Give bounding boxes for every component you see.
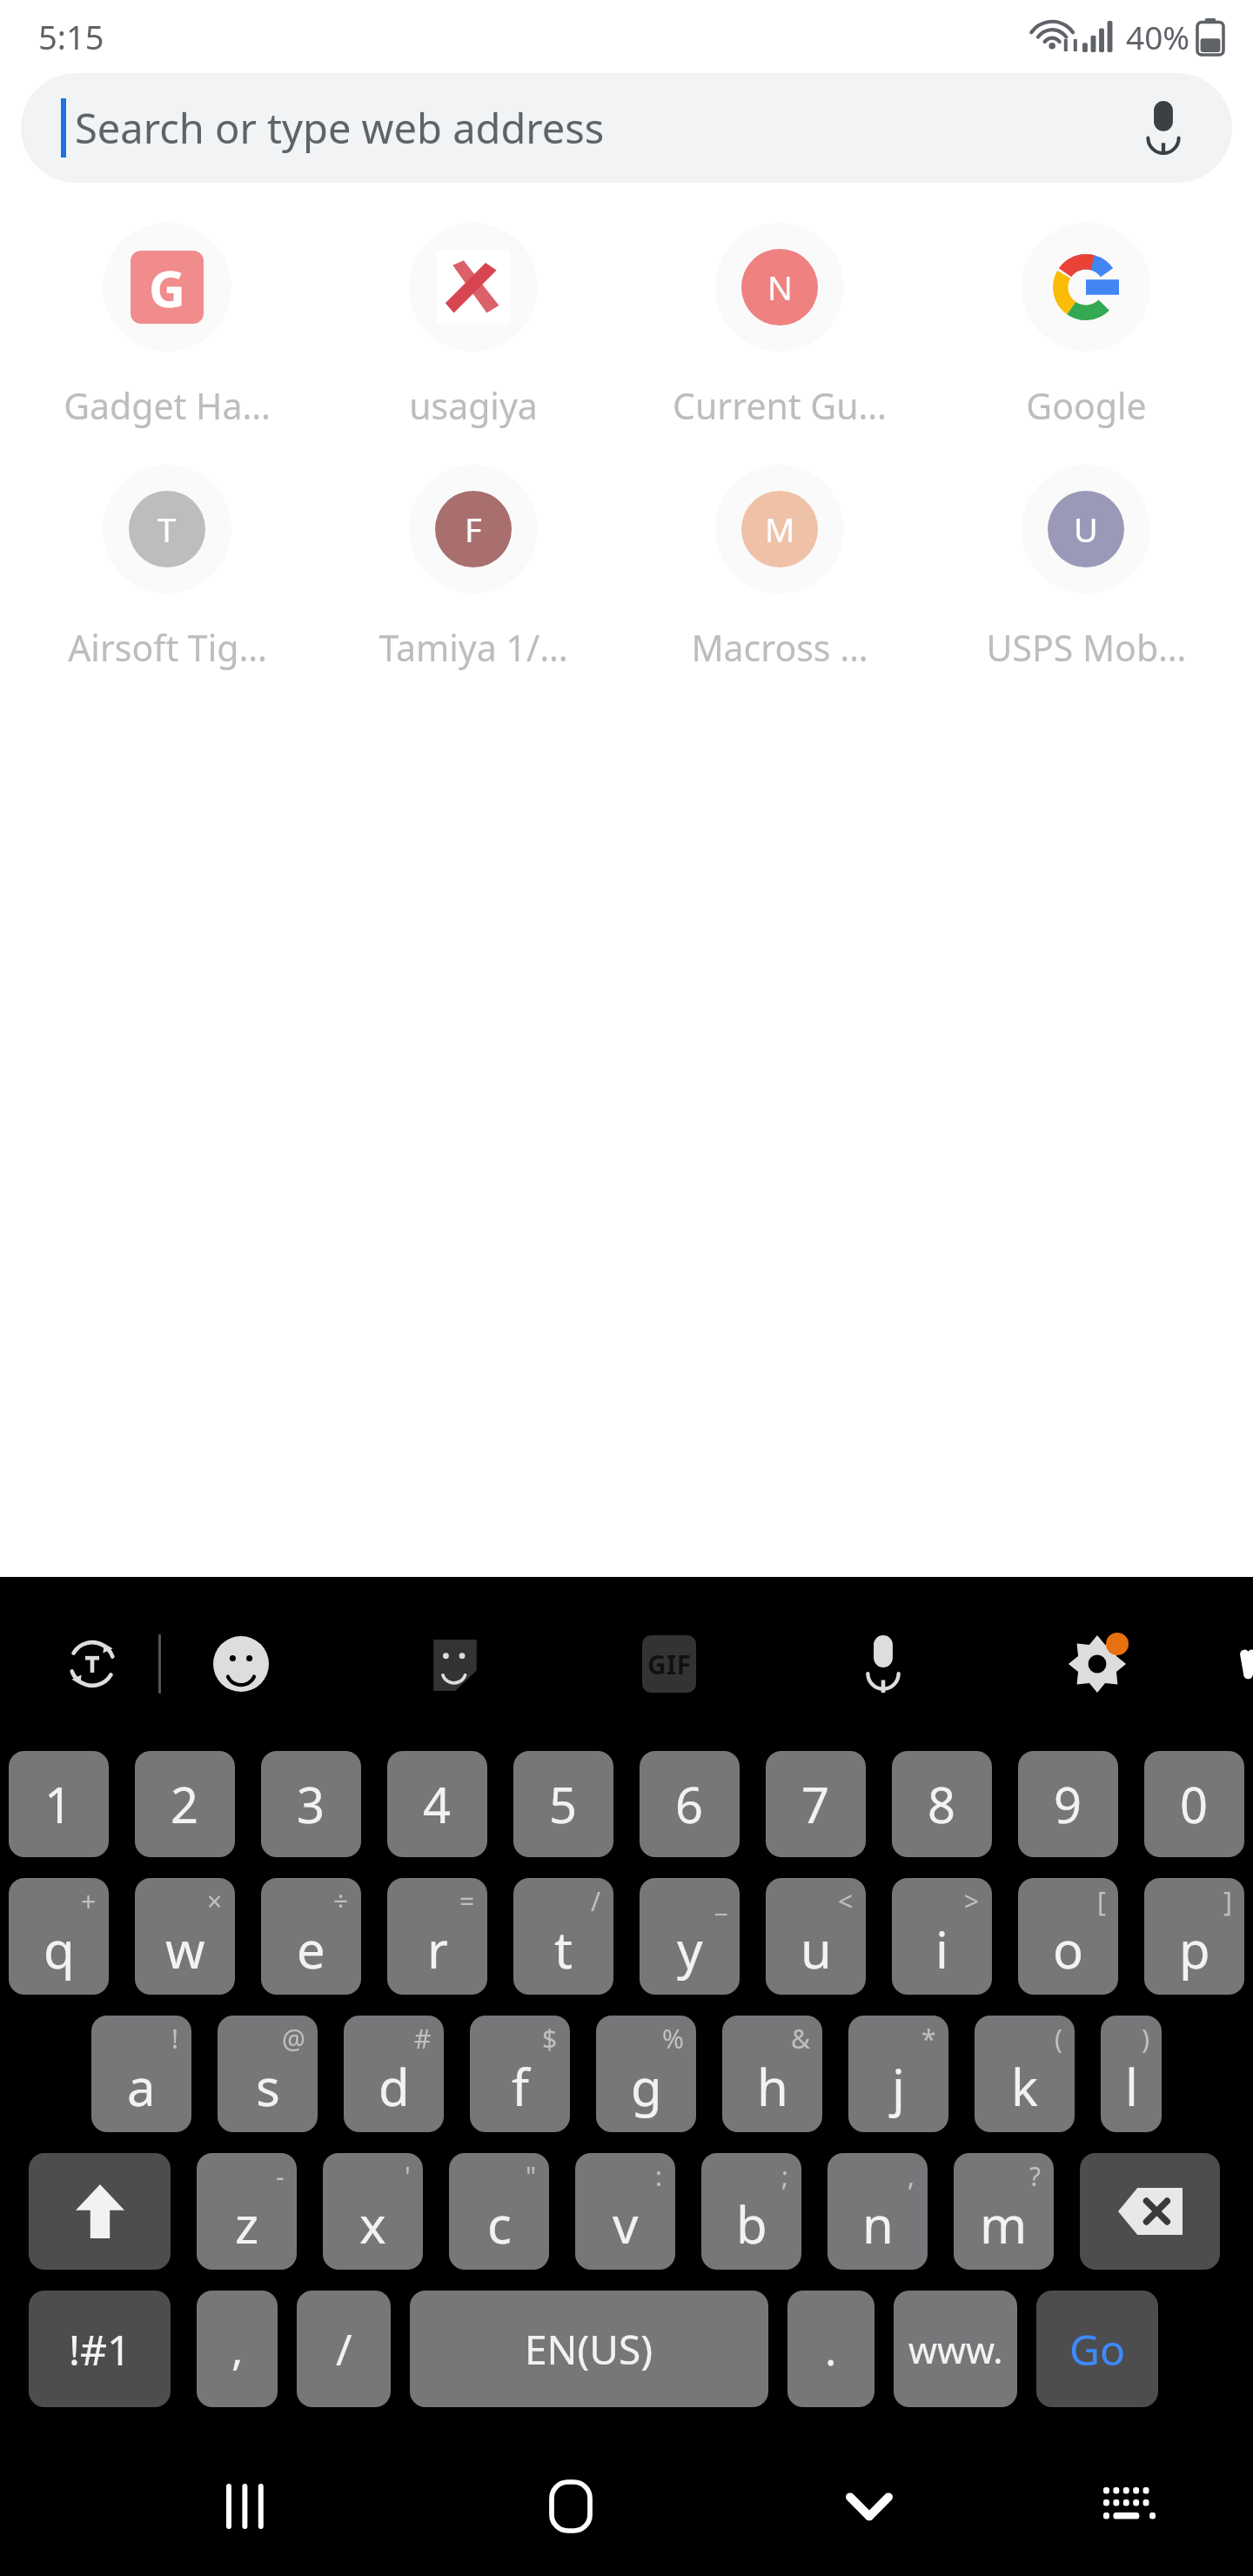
button[interactable]: Stickers (413, 1622, 497, 1706)
button[interactable]: EN(US) (410, 2291, 768, 2407)
button[interactable]: 4 (387, 1751, 487, 1857)
button[interactable]: 6 (640, 1751, 740, 1857)
staticText: 6 (675, 1771, 704, 1837)
staticText: 0 (1180, 1771, 1209, 1837)
button[interactable]: @ (218, 2016, 318, 2132)
button[interactable]: Voice search (1116, 80, 1211, 176)
button[interactable]: G (14, 223, 320, 430)
button[interactable]: F (320, 465, 626, 672)
staticText: n (862, 2190, 894, 2258)
staticText: k (1011, 2052, 1038, 2121)
staticText: z (235, 2190, 259, 2258)
button[interactable]: , (197, 2291, 278, 2407)
button[interactable]: ' (323, 2153, 423, 2270)
button[interactable]: Search or type web address (21, 73, 1232, 183)
staticText: u (801, 1915, 832, 1983)
button[interactable]: " (449, 2153, 549, 2270)
button[interactable]: 0 (1144, 1751, 1244, 1857)
staticText: - (276, 2158, 285, 2194)
staticText: Current Gu… (673, 381, 887, 430)
staticText: j (892, 2052, 905, 2121)
staticText: 40% (1126, 15, 1190, 58)
button[interactable]: ( (975, 2016, 1075, 2132)
button[interactable]: 2 (135, 1751, 235, 1857)
button[interactable]: $ (470, 2016, 570, 2132)
button[interactable]: ! (91, 2016, 191, 2132)
button[interactable]: Shift (29, 2153, 171, 2270)
staticText: b (736, 2190, 767, 2258)
button[interactable]: M (626, 465, 933, 672)
staticText: 9 (1054, 1771, 1082, 1837)
staticText: ? (1029, 2158, 1042, 2194)
button[interactable]: ? (954, 2153, 1054, 2270)
button[interactable]: 7 (766, 1751, 866, 1857)
staticText: g (631, 2052, 662, 2121)
button[interactable]: Google (933, 223, 1239, 430)
button[interactable]: × (135, 1878, 235, 1995)
button[interactable]: Emoji (199, 1622, 283, 1706)
staticText: T (157, 506, 177, 552)
button[interactable]: 1 (9, 1751, 109, 1857)
staticText: ' (405, 2158, 411, 2194)
button[interactable]: # (344, 2016, 444, 2132)
staticText: U (1074, 506, 1098, 552)
button[interactable]: Keyboard (1077, 2454, 1182, 2559)
button[interactable]: + (9, 1878, 109, 1995)
button[interactable]: _ (640, 1878, 740, 1995)
button[interactable]: T (14, 465, 320, 672)
button[interactable]: ÷ (261, 1878, 361, 1995)
staticText: , (908, 2158, 915, 2194)
staticText: @ (282, 2021, 305, 2056)
button[interactable]: / (297, 2291, 391, 2407)
button[interactable]: = (387, 1878, 487, 1995)
staticText: y (677, 1915, 703, 1983)
staticText: × (207, 1883, 223, 1919)
button[interactable]: Hide keyboard (1243, 1622, 1253, 1706)
staticText: ] (1223, 1883, 1232, 1919)
staticText: 3 (297, 1771, 325, 1837)
button[interactable]: 5 (513, 1751, 613, 1857)
button[interactable]: - (197, 2153, 297, 2270)
button[interactable]: ; (701, 2153, 801, 2270)
button[interactable]: Voice input (841, 1622, 925, 1706)
staticText: , (231, 2319, 244, 2378)
button[interactable]: GIF (627, 1622, 711, 1706)
button[interactable]: / (513, 1878, 613, 1995)
button[interactable]: 9 (1018, 1751, 1118, 1857)
staticText: USPS Mob… (986, 623, 1187, 672)
staticText: & (791, 2021, 810, 2056)
button[interactable]: ) (1101, 2016, 1162, 2132)
staticText: + (81, 1883, 97, 1919)
button[interactable]: : (575, 2153, 675, 2270)
button[interactable]: * (848, 2016, 948, 2132)
button[interactable]: usagiya (320, 223, 626, 430)
button[interactable]: [ (1018, 1878, 1118, 1995)
staticText: 2 (171, 1771, 199, 1837)
button[interactable]: > (892, 1878, 992, 1995)
button[interactable]: U (933, 465, 1239, 672)
button[interactable]: 8 (892, 1751, 992, 1857)
button[interactable]: N (626, 223, 933, 430)
button[interactable]: Home (519, 2454, 623, 2559)
button[interactable]: ] (1144, 1878, 1244, 1995)
staticText: % (662, 2021, 684, 2056)
button[interactable]: % (596, 2016, 696, 2132)
button[interactable]: www. (894, 2291, 1017, 2407)
button[interactable]: Settings (1055, 1622, 1139, 1706)
staticText: www. (908, 2324, 1003, 2374)
button[interactable]: . (787, 2291, 874, 2407)
button[interactable]: Recents (194, 2454, 298, 2559)
staticText: t (554, 1915, 573, 1983)
staticText: EN(US) (525, 2322, 653, 2377)
button[interactable]: , (828, 2153, 928, 2270)
button[interactable]: 3 (261, 1751, 361, 1857)
button[interactable]: < (766, 1878, 866, 1995)
button[interactable]: !#1 (29, 2291, 171, 2407)
button[interactable]: Translate (50, 1622, 134, 1706)
button[interactable]: & (722, 2016, 822, 2132)
staticText: G (149, 253, 185, 322)
button[interactable]: Go (1036, 2291, 1158, 2407)
button[interactable]: Back (817, 2454, 921, 2559)
button[interactable]: Backspace (1080, 2153, 1220, 2270)
staticText: / (591, 1883, 601, 1919)
